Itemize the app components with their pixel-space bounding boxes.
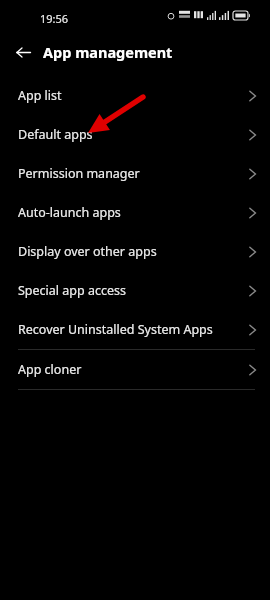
button[interactable]: Recover Uninstalled System Apps xyxy=(0,310,270,349)
staticText: Recover Uninstalled System Apps xyxy=(18,321,213,338)
staticText: 19:56 xyxy=(40,11,69,26)
staticText: App list xyxy=(18,87,62,104)
staticText: Auto-launch apps xyxy=(18,204,121,221)
staticText: Default apps xyxy=(18,126,93,143)
staticText: Permission manager xyxy=(18,165,140,182)
button[interactable]: Back xyxy=(9,38,38,67)
staticText: Display over other apps xyxy=(18,243,157,260)
button[interactable]: App cloner xyxy=(0,350,270,389)
button[interactable]: Permission manager xyxy=(0,154,270,193)
button[interactable]: Default apps xyxy=(0,115,270,154)
button[interactable]: Display over other apps xyxy=(0,232,270,271)
staticText: Special app access xyxy=(18,282,126,299)
staticText: App management xyxy=(43,42,173,62)
button[interactable]: Auto-launch apps xyxy=(0,193,270,232)
button[interactable]: App list xyxy=(0,76,270,115)
staticText: App cloner xyxy=(18,361,82,378)
button[interactable]: Special app access xyxy=(0,271,270,310)
